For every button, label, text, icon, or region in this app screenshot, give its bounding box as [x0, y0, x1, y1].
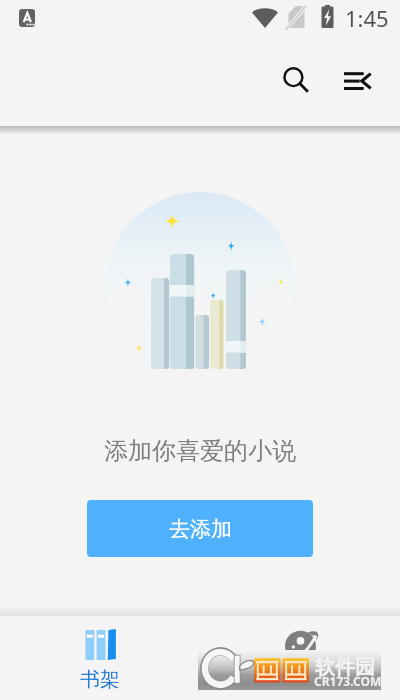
staticText: 去添加 [169, 516, 232, 542]
staticText: 软件园 [315, 655, 375, 680]
staticText: 添加你喜爱的小说 [104, 436, 296, 466]
staticText: 1:45 [345, 3, 389, 33]
button[interactable]: Search [272, 56, 320, 104]
staticText: 发现 [280, 667, 320, 692]
staticText: CR173.COM [314, 673, 382, 689]
staticText: 书架 [80, 667, 120, 692]
button[interactable]: Menu [333, 57, 381, 105]
button[interactable]: 去添加 [87, 500, 313, 557]
button[interactable]: 发现 [200, 616, 400, 700]
button[interactable]: 书架 [0, 616, 200, 700]
